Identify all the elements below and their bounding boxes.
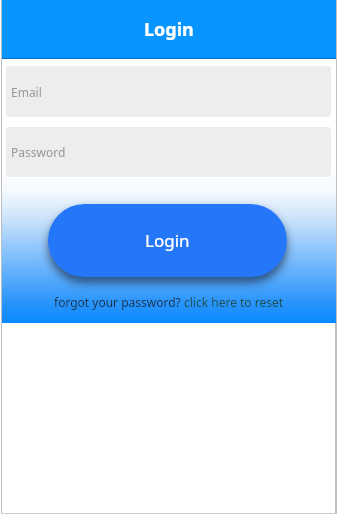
- button[interactable]: click here to reset: [184, 294, 284, 310]
- staticText: Email: [11, 84, 42, 100]
- staticText: Login: [145, 229, 190, 252]
- button[interactable]: Login: [48, 204, 287, 277]
- staticText: Login: [144, 17, 194, 42]
- staticText: Password: [11, 144, 66, 160]
- button[interactable]: Password: [6, 127, 331, 177]
- staticText: forgot your password?: [54, 294, 184, 310]
- button[interactable]: Email: [6, 66, 331, 117]
